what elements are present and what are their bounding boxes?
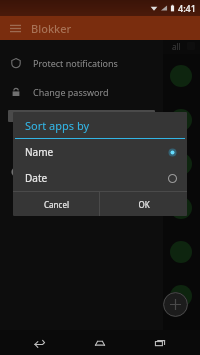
button[interactable]: OK [100,192,187,216]
button[interactable]: Add [163,292,188,317]
staticText: Change password [33,86,109,98]
button[interactable]: Name [13,139,187,165]
button[interactable]: Change password [0,77,163,106]
button[interactable]: Home [80,330,120,355]
button[interactable]: Protect notifications [0,48,163,77]
staticText: OK [138,199,150,210]
staticText: Blokker [31,21,72,36]
staticText: 4:41 [178,2,196,14]
button[interactable]: News notifications [0,128,163,157]
button[interactable]: Cancel [13,192,99,216]
button[interactable]: Open navigation drawer [7,20,23,36]
staticText: Sort apps by [25,118,90,133]
staticText: News notifications [33,137,135,149]
button[interactable]: Recents [140,330,180,355]
staticText: all [172,41,181,52]
button[interactable]: About [0,157,163,186]
button[interactable] [8,110,155,122]
staticText: About [33,166,59,178]
button[interactable]: Back [20,330,60,355]
staticText: Date [25,171,168,185]
staticText: Protect notifications [33,57,118,69]
staticText: Name [25,145,168,159]
button[interactable]: Date [13,165,187,191]
staticText: Cancel [44,199,69,210]
